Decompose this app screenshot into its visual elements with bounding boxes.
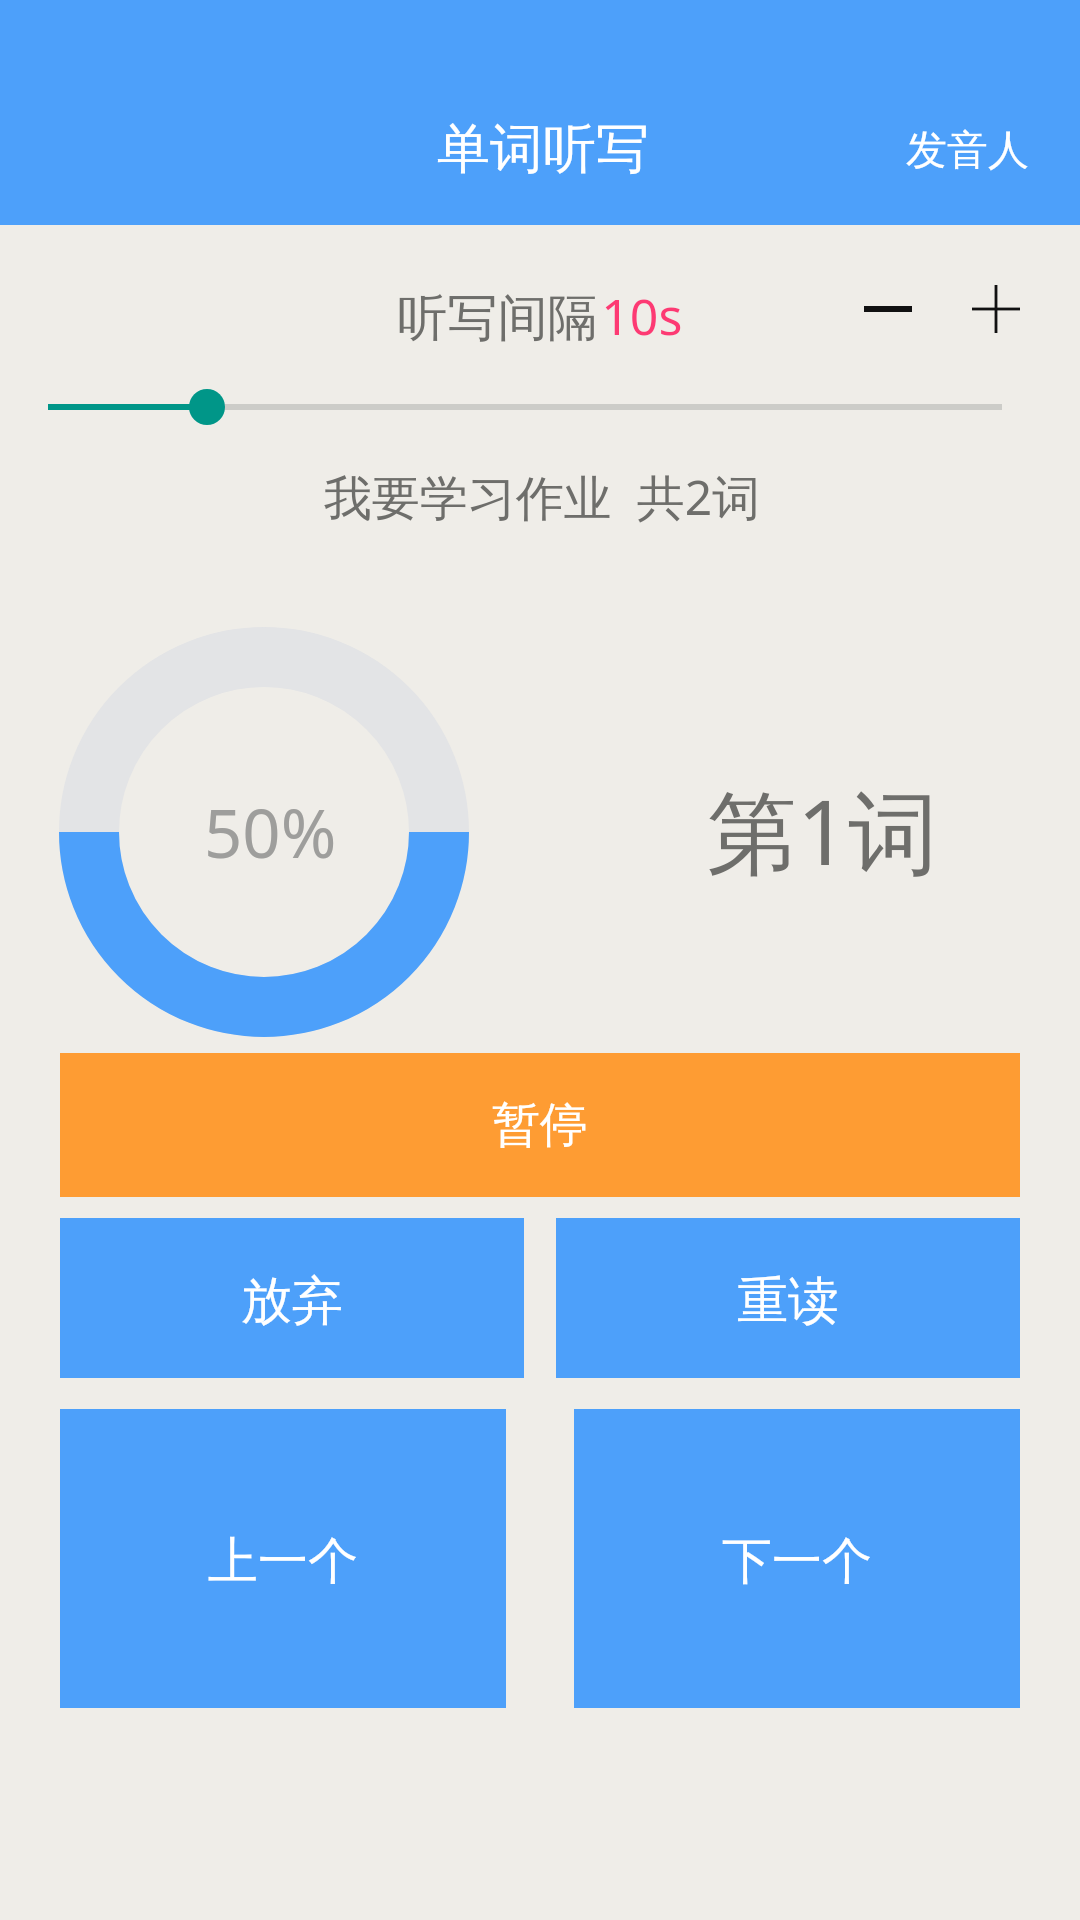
button[interactable]: Increase interval [948,261,1044,357]
staticText: 放弃 [241,1269,343,1333]
button[interactable]: 下一个 [574,1409,1020,1708]
staticText: 听写间隔 10s [0,282,1080,350]
staticText: 重读 [737,1269,839,1333]
button[interactable]: 上一个 [60,1409,506,1708]
staticText: 单词听写 [437,116,649,183]
button[interactable]: 重读 [556,1218,1020,1378]
staticText: 发音人 [906,125,1029,177]
button[interactable]: 发音人 [878,111,1057,191]
button[interactable]: Decrease interval [840,261,936,357]
button[interactable]: 暂停 [60,1053,1020,1197]
button[interactable]: Dictation interval slider [0,377,1080,437]
staticText: 暂停 [492,1095,588,1155]
button[interactable]: 放弃 [60,1218,524,1378]
staticText: 第1词 [707,769,939,892]
staticText: 50% [204,786,337,877]
staticText: 我要学习作业 共2词 [2,464,1080,530]
staticText: 上一个 [208,1530,358,1593]
staticText: 下一个 [722,1530,872,1593]
